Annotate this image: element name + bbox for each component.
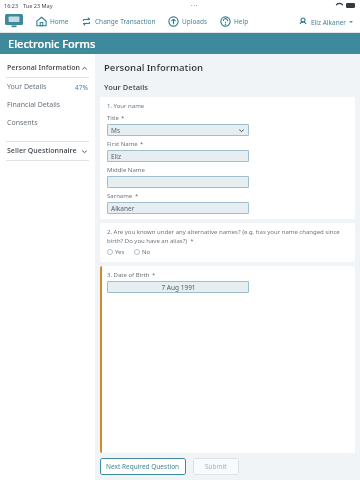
staticText: Your Details (7, 82, 47, 92)
staticText: Seller Questionnaire (7, 146, 77, 156)
button[interactable]: Eliz Alkaner (296, 15, 355, 29)
staticText: 2. Are you known under any alternative n… (107, 228, 348, 244)
staticText: Middle Name (107, 166, 145, 174)
button[interactable]: Seller Questionnaire (0, 142, 95, 160)
staticText: Personal Information (104, 61, 204, 74)
staticText: 3. Date of Birth (107, 271, 150, 279)
staticText: Sarname (107, 192, 133, 200)
staticText: Home (50, 17, 69, 26)
button[interactable]: Yes (107, 247, 125, 257)
staticText: Title (107, 114, 119, 122)
button[interactable]: Financial Details (0, 96, 95, 114)
staticText: Tue 23 May (23, 2, 53, 9)
button[interactable]: Change Transaction (79, 14, 158, 29)
button[interactable]: Help (218, 14, 251, 29)
button[interactable]: Personal Information (0, 59, 95, 77)
staticText: * (121, 114, 125, 122)
staticText: Yes (115, 248, 125, 256)
staticText: 1. Your name (107, 102, 145, 110)
button[interactable]: Submit (193, 458, 239, 475)
staticText: Eliz Alkaner (311, 18, 347, 27)
staticText: * (140, 140, 144, 148)
staticText: 7 Aug 1991 (161, 283, 196, 292)
staticText: Consents (7, 118, 38, 128)
button[interactable]: No (134, 247, 151, 257)
button[interactable]: 7 Aug 1991 (107, 281, 249, 293)
staticText: First Name (107, 140, 138, 148)
button[interactable]: 2. Are you known under any alternative n… (100, 223, 355, 262)
staticText: No (142, 248, 151, 256)
button[interactable] (107, 176, 249, 188)
button[interactable]: Uploads (166, 14, 210, 29)
staticText: Submit (205, 462, 227, 471)
button[interactable]: Your Details (0, 78, 95, 96)
button[interactable]: 1. Your name (100, 97, 355, 219)
button[interactable]: Ms (107, 124, 249, 136)
staticText: * (135, 192, 139, 200)
staticText: Personal Information (7, 63, 81, 73)
button[interactable]: Company logo, home (5, 14, 23, 29)
button[interactable]: Alkaner (107, 202, 249, 214)
staticText: Electronic Forms (8, 36, 96, 51)
button[interactable]: Eliz (107, 150, 249, 162)
staticText: • • • (191, 3, 198, 8)
button[interactable]: Next Required Question (100, 458, 186, 475)
button[interactable]: Home (34, 14, 71, 29)
staticText: Next Required Question (106, 462, 180, 471)
staticText: Financial Details (7, 100, 61, 110)
staticText: 16:23 (4, 2, 19, 9)
staticText: Change Transaction (95, 17, 156, 26)
button[interactable]: 3. Date of Birth (100, 266, 355, 453)
staticText: * (152, 271, 156, 279)
staticText: Ms (111, 126, 121, 135)
button[interactable]: Consents (0, 114, 95, 132)
staticText: Your Details (104, 82, 149, 92)
staticText: Alkaner (111, 204, 135, 213)
staticText: 47% (75, 83, 88, 92)
staticText: Help (234, 17, 249, 26)
staticText: Eliz (111, 152, 122, 161)
staticText: Uploads (182, 17, 208, 26)
